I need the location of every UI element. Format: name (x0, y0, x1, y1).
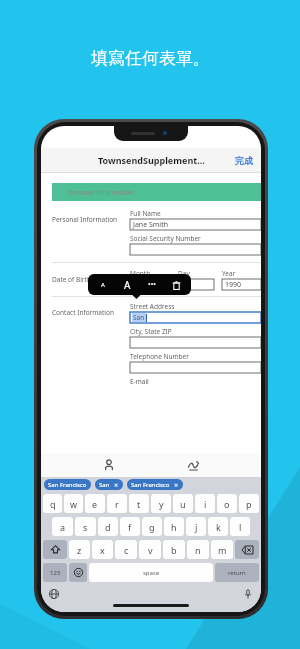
button[interactable]: 1990 (222, 279, 261, 290)
staticText: San (99, 481, 110, 489)
button[interactable]: t (129, 494, 149, 513)
staticText: 123 (50, 569, 61, 577)
staticText: Month (130, 269, 151, 278)
staticText: g (149, 521, 155, 533)
button[interactable]: space (89, 563, 213, 582)
staticText: p (246, 498, 252, 510)
staticText: u (180, 498, 186, 510)
staticText: San Francisco (131, 481, 170, 489)
button[interactable]: r (107, 494, 127, 513)
button[interactable] (178, 279, 214, 290)
button[interactable] (130, 244, 261, 255)
button[interactable] (130, 279, 172, 290)
button[interactable] (235, 540, 259, 559)
staticText: y (159, 498, 164, 510)
button[interactable]: Dictate (241, 587, 255, 601)
button[interactable]: h (164, 517, 184, 536)
button[interactable]: c (115, 540, 137, 559)
staticText: Telephone Number (130, 352, 189, 361)
button[interactable]: o (217, 494, 237, 513)
button[interactable]: l (230, 517, 250, 536)
button[interactable]: Smaller text (94, 276, 112, 294)
staticText: TownsendSupplement... (98, 154, 205, 166)
button[interactable]: Contact (98, 454, 120, 476)
button[interactable] (69, 563, 87, 582)
staticText: Personal Information (52, 215, 130, 224)
staticText: Year (222, 269, 236, 278)
staticText: b (171, 544, 177, 556)
button[interactable]: k (208, 517, 228, 536)
button[interactable]: n (187, 540, 209, 559)
button[interactable]: San (95, 479, 123, 490)
button[interactable]: z (69, 540, 90, 559)
button[interactable]: e (85, 494, 105, 513)
staticText: d (105, 521, 111, 533)
button[interactable]: Jane Smith (130, 219, 261, 230)
staticText: o (224, 498, 230, 510)
button[interactable]: TownsendSupplement... (41, 148, 261, 172)
staticText: Street Address (130, 302, 175, 311)
button[interactable]: q (43, 494, 62, 513)
staticText: Jane Smith (133, 220, 168, 230)
button[interactable]: x (92, 540, 113, 559)
staticText: A (124, 278, 131, 292)
button[interactable]: San Francisco (127, 479, 183, 490)
staticText: l (239, 521, 242, 533)
staticText: v (148, 544, 153, 556)
staticText: f (128, 521, 132, 533)
button[interactable]: j (186, 517, 206, 536)
button[interactable]: b (163, 540, 185, 559)
staticText: 填寫任何表單。 (91, 48, 210, 69)
button[interactable]: f (120, 517, 140, 536)
button[interactable]: San (130, 312, 261, 323)
staticText: Personal Information (68, 188, 134, 197)
button[interactable]: More options (143, 276, 161, 294)
button[interactable]: w (64, 494, 83, 513)
staticText: ••• (148, 280, 156, 290)
staticText: k (216, 521, 221, 533)
staticText: A (101, 281, 105, 289)
button[interactable]: p (239, 494, 259, 513)
staticText: return (228, 569, 246, 577)
staticText: Date of Birth (52, 275, 130, 284)
button[interactable]: San Francisco (44, 479, 91, 490)
staticText: x (100, 544, 105, 556)
staticText: m (218, 544, 227, 556)
button[interactable]: Change keyboard (47, 587, 61, 601)
button[interactable]: g (142, 517, 162, 536)
staticText: 完成 (235, 155, 253, 166)
button[interactable]: y (151, 494, 171, 513)
button[interactable]: s (75, 517, 96, 536)
button[interactable]: 123 (43, 563, 67, 582)
button[interactable]: Larger text (118, 276, 136, 294)
staticText: E-mail (130, 377, 149, 386)
staticText: space (143, 569, 160, 577)
button[interactable]: u (173, 494, 193, 513)
staticText: t (137, 498, 141, 510)
button[interactable] (43, 540, 67, 559)
staticText: ✕ (114, 482, 119, 488)
button[interactable] (130, 362, 261, 373)
staticText: San Francisco (48, 481, 87, 489)
button[interactable]: 完成 (233, 153, 255, 168)
button[interactable]: Signature (182, 454, 204, 476)
staticText: San (133, 313, 145, 322)
button[interactable] (130, 337, 261, 348)
staticText: Social Security Number (130, 234, 201, 243)
staticText: City, State ZIP (130, 327, 172, 336)
button[interactable]: i (195, 494, 215, 513)
staticText: z (77, 544, 82, 556)
button[interactable]: return (215, 563, 259, 582)
staticText: Contact Information (52, 308, 130, 317)
staticText: n (195, 544, 201, 556)
button[interactable]: m (211, 540, 233, 559)
button[interactable]: a (52, 517, 73, 536)
button[interactable]: d (98, 517, 118, 536)
staticText: j (195, 521, 198, 533)
staticText: h (171, 521, 177, 533)
button[interactable]: v (139, 540, 161, 559)
staticText: a (60, 521, 66, 533)
staticText: c (124, 544, 129, 556)
button[interactable]: Delete (167, 276, 185, 294)
staticText: e (92, 498, 98, 510)
